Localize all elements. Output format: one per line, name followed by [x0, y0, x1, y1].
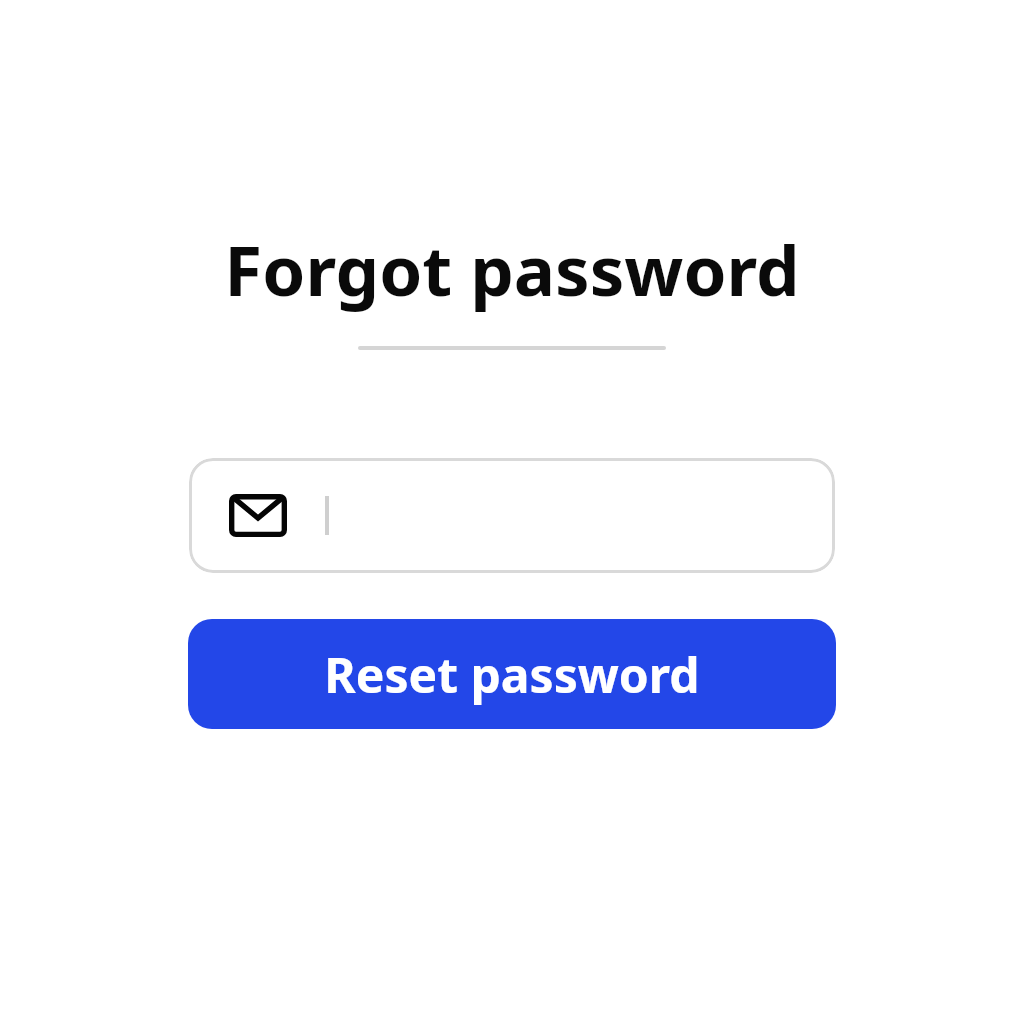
- other: Email: [229, 494, 287, 537]
- staticText: Forgot password: [224, 222, 800, 316]
- button[interactable]: Reset password: [188, 619, 836, 729]
- staticText: Reset password: [324, 642, 700, 707]
- button[interactable]: Email: [189, 458, 835, 573]
